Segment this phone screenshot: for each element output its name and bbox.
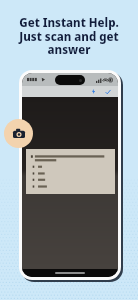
button[interactable]: Confirm <box>102 86 114 97</box>
button[interactable]: Scan with camera <box>4 119 33 148</box>
button[interactable]: Flash <box>87 86 99 97</box>
staticText: Get Instant Help. Just scan and get answ… <box>0 15 138 57</box>
